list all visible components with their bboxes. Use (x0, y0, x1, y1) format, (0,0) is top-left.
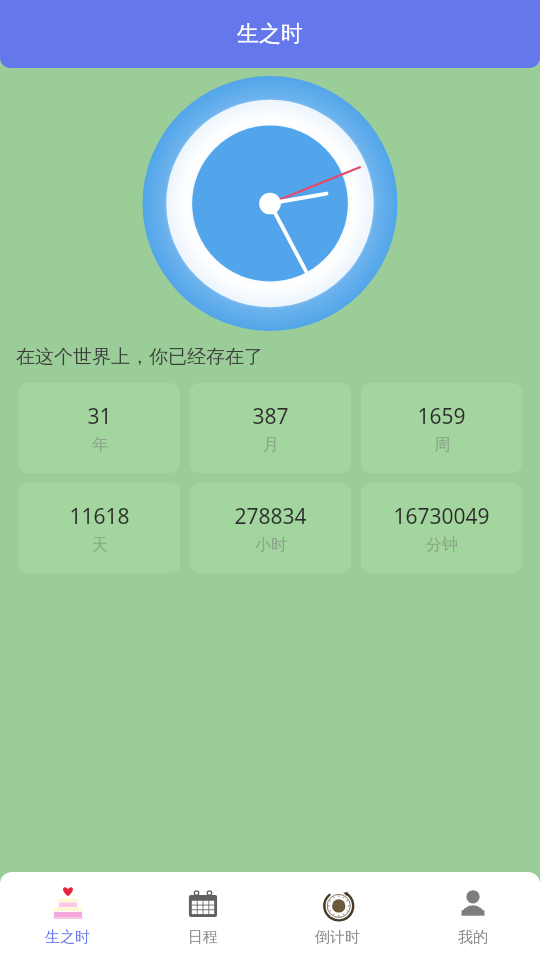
button[interactable]: 31 (18, 383, 180, 473)
staticText: 月 (263, 435, 279, 455)
staticText: 周 (434, 435, 450, 455)
staticText: 日程 (188, 928, 218, 947)
staticText: 生之时 (237, 20, 303, 48)
button[interactable]: 生之时 (0, 872, 135, 960)
staticText: 小时 (255, 535, 287, 555)
staticText: 278834 (234, 502, 307, 531)
button[interactable]: 278834 (190, 483, 351, 573)
button[interactable]: 日程 (135, 872, 270, 960)
button[interactable]: 16730049 (361, 483, 522, 573)
staticText: 天 (92, 535, 108, 555)
staticText: 31 (87, 402, 112, 431)
staticText: 387 (252, 402, 289, 431)
staticText: 11618 (69, 502, 130, 531)
staticText: 倒计时 (315, 928, 360, 947)
button[interactable]: 387 (190, 383, 351, 473)
button[interactable]: 倒计时 (270, 872, 405, 960)
staticText: 16730049 (393, 502, 490, 531)
button[interactable]: 11618 (18, 483, 180, 573)
staticText: 我的 (458, 928, 488, 947)
staticText: 分钟 (426, 535, 458, 555)
staticText: 在这个世界上，你已经存在了 (16, 345, 263, 369)
staticText: 年 (92, 435, 108, 455)
staticText: 1659 (417, 402, 466, 431)
staticText: 生之时 (45, 928, 90, 947)
button[interactable]: 1659 (361, 383, 522, 473)
button[interactable]: 我的 (405, 872, 540, 960)
